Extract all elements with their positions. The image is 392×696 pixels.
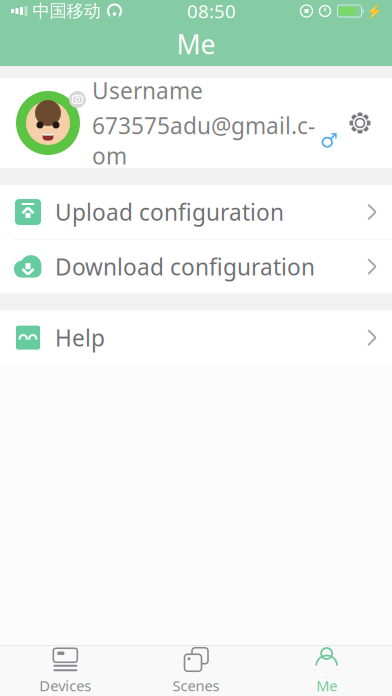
staticText: ⚡ (366, 3, 383, 19)
staticText: Me (316, 676, 337, 695)
button[interactable]: Download configuration (0, 240, 392, 294)
staticText: Help (55, 322, 105, 353)
staticText: Devices (39, 676, 91, 695)
button[interactable]: Username (0, 78, 392, 168)
button[interactable]: Devices (0, 646, 131, 696)
button[interactable]: Upload configuration (0, 185, 392, 239)
button[interactable]: Me (261, 646, 392, 696)
button[interactable]: Scenes (131, 646, 261, 696)
staticText: Upload configuration (55, 197, 284, 227)
staticText: 673575adu@gmail.com (92, 110, 315, 171)
staticText: Me (176, 26, 215, 62)
button[interactable]: Help (0, 311, 392, 365)
staticText: 08:50 (187, 0, 236, 23)
staticText: Download configuration (55, 251, 315, 282)
staticText: Scenes (172, 676, 219, 695)
staticText: Username (92, 75, 203, 105)
staticText: 中国移动 (32, 0, 100, 22)
staticText: ♂ (320, 129, 338, 152)
